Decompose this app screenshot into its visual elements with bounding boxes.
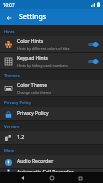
staticText: Hints by different colors of tiles xyxy=(17,46,70,51)
staticText: Audio Recorder xyxy=(17,158,54,165)
button[interactable]: Home xyxy=(47,173,57,183)
button[interactable]: Toggle xyxy=(88,58,99,65)
button[interactable]: Toggle xyxy=(88,41,99,48)
button[interactable]: Automatic Call Recorder xyxy=(0,169,103,172)
button[interactable]: Privacy Policy xyxy=(0,107,103,120)
staticText: Hints by hiding used numbers xyxy=(17,63,68,68)
staticText: 10:07 xyxy=(3,2,15,8)
staticText: Themes xyxy=(4,73,20,79)
staticText: Color Hints xyxy=(17,38,44,45)
button[interactable]: Color Theme xyxy=(0,80,103,96)
staticText: Change color theme xyxy=(17,90,52,95)
staticText: More xyxy=(4,148,15,154)
staticText: Hints xyxy=(4,29,15,35)
staticText: Version xyxy=(4,124,20,130)
button[interactable]: Back xyxy=(2,11,15,24)
staticText: Color Theme xyxy=(17,82,48,89)
button[interactable]: Keypad Hints xyxy=(0,53,103,69)
button[interactable]: Audio Recorder xyxy=(0,155,103,168)
staticText: Keypad Hints xyxy=(17,55,48,62)
staticText: Automatic Call Recorder xyxy=(17,169,74,172)
button[interactable]: 1.2 xyxy=(0,131,103,144)
button[interactable]: Color Hints xyxy=(0,36,103,52)
button[interactable]: Back xyxy=(18,173,28,183)
staticText: Privacy Policy xyxy=(17,110,49,117)
button[interactable]: Recents xyxy=(75,173,85,183)
staticText: 1.2 xyxy=(17,134,25,141)
staticText: Privacy Policy xyxy=(4,100,32,106)
staticText: Settings xyxy=(19,12,47,22)
